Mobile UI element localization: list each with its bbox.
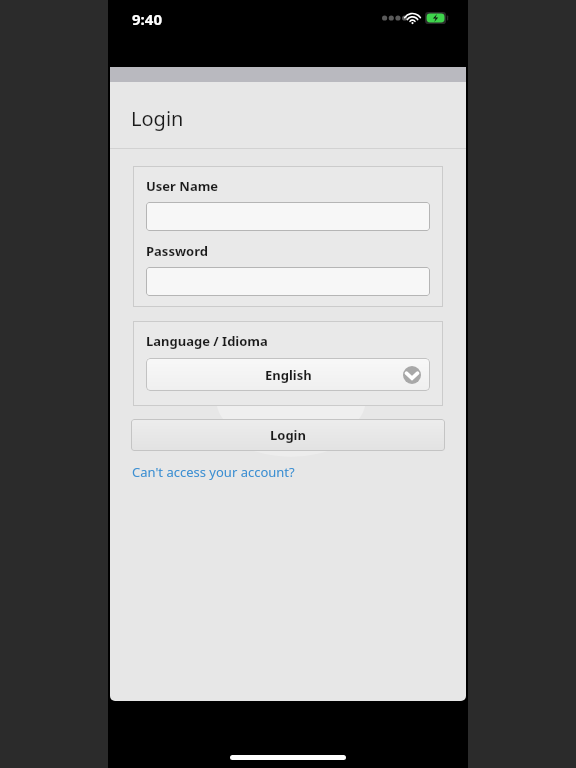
staticText: Password: [146, 242, 208, 260]
button[interactable]: Select language: [146, 358, 430, 391]
button[interactable]: [146, 267, 430, 296]
button[interactable]: Login: [131, 419, 445, 451]
staticText: English: [265, 366, 312, 384]
button[interactable]: Can't access your account?: [131, 461, 296, 483]
staticText: Language / Idioma: [146, 332, 268, 350]
staticText: 9:40: [132, 9, 162, 29]
staticText: Can't access your account?: [132, 463, 295, 481]
staticText: Login: [131, 105, 184, 132]
button[interactable]: [146, 202, 430, 231]
staticText: Login: [270, 426, 306, 444]
staticText: User Name: [146, 177, 219, 195]
